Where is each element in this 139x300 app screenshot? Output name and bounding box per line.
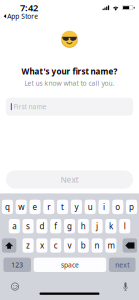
button[interactable]: m xyxy=(105,238,116,253)
button[interactable]: p xyxy=(126,200,137,214)
button[interactable]: z xyxy=(23,238,34,253)
button[interactable]: Shift xyxy=(2,238,16,253)
button[interactable]: v xyxy=(64,238,75,253)
staticText: next xyxy=(115,260,129,269)
button[interactable]: h xyxy=(78,219,89,233)
button[interactable]: x xyxy=(36,238,47,253)
staticText: i xyxy=(103,202,105,212)
button[interactable]: Emoji keyboard xyxy=(11,282,19,290)
staticText: What's your first name? xyxy=(21,66,117,77)
staticText: l xyxy=(124,221,126,231)
staticText: j xyxy=(96,221,98,231)
button[interactable]: q xyxy=(2,200,13,214)
staticText: o xyxy=(115,202,120,212)
button[interactable]: g xyxy=(64,219,75,233)
button[interactable]: y xyxy=(71,200,82,214)
staticText: t xyxy=(61,202,64,212)
button[interactable]: b xyxy=(78,238,89,253)
button[interactable]: f xyxy=(50,219,61,233)
staticText: 7:42 xyxy=(20,1,38,14)
button[interactable]: r xyxy=(43,200,54,214)
staticText: d xyxy=(39,221,44,231)
staticText: v xyxy=(67,240,71,251)
staticText: z xyxy=(26,240,30,251)
staticText: p xyxy=(129,202,134,212)
button[interactable]: Dictation xyxy=(123,282,128,291)
staticText: First name xyxy=(13,102,46,111)
button[interactable]: Delete xyxy=(123,238,137,253)
button[interactable]: w xyxy=(16,200,27,214)
button[interactable]: i xyxy=(98,200,110,214)
button[interactable]: u xyxy=(85,200,96,214)
staticText: e xyxy=(32,202,37,212)
staticText: m xyxy=(107,240,114,251)
button[interactable]: Next xyxy=(6,170,133,189)
button[interactable]: e xyxy=(29,200,41,214)
staticText: s xyxy=(26,221,30,231)
button[interactable]: Back to App Store xyxy=(0,13,139,19)
button[interactable]: o xyxy=(112,200,123,214)
staticText: space xyxy=(61,260,79,269)
staticText: g xyxy=(67,221,72,231)
button[interactable]: First name xyxy=(6,98,133,116)
staticText: c xyxy=(54,240,58,251)
staticText: App Store xyxy=(7,12,38,21)
button[interactable]: l xyxy=(119,219,130,233)
staticText: x xyxy=(40,240,44,251)
staticText: Let us know what to call you. xyxy=(24,79,114,88)
staticText: Next xyxy=(60,174,78,185)
button[interactable]: 123 xyxy=(3,258,31,272)
staticText: h xyxy=(81,221,86,231)
button[interactable]: n xyxy=(91,238,103,253)
staticText: f xyxy=(54,221,57,231)
button[interactable]: t xyxy=(57,200,68,214)
staticText: n xyxy=(95,240,100,251)
button[interactable]: d xyxy=(36,219,47,233)
staticText: y xyxy=(74,202,78,212)
button[interactable]: a xyxy=(9,219,20,233)
button[interactable]: next xyxy=(109,258,136,272)
staticText: k xyxy=(109,221,113,231)
staticText: 123 xyxy=(11,260,23,269)
button[interactable]: j xyxy=(92,219,103,233)
staticText: w xyxy=(18,202,24,212)
staticText: q xyxy=(5,202,10,212)
staticText: r xyxy=(47,202,50,212)
button[interactable]: space xyxy=(34,258,106,272)
staticText: b xyxy=(81,240,86,251)
button[interactable]: c xyxy=(50,238,61,253)
button[interactable]: k xyxy=(105,219,116,233)
button[interactable]: s xyxy=(23,219,34,233)
staticText: a xyxy=(12,221,16,231)
staticText: u xyxy=(88,202,93,212)
